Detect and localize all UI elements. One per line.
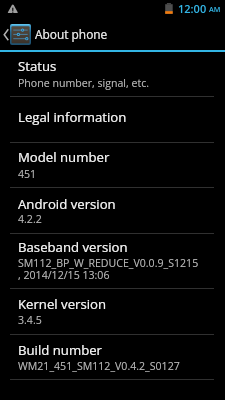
staticText: Legal information — [18, 108, 127, 126]
staticText: WM21_451_SM112_V0.4.2_S0127 — [18, 359, 180, 373]
staticText: 451 — [18, 167, 37, 181]
staticText: AM — [209, 4, 221, 14]
staticText: Phone number, signal, etc. — [18, 76, 150, 90]
staticText: Kernel version — [18, 295, 107, 313]
staticText: 12:00 — [178, 1, 207, 16]
staticText: Status — [18, 57, 57, 75]
staticText: SM112_BP_W_REDUCE_V0.0.9_S1215 , 2014/12… — [18, 256, 199, 282]
staticText: 3.4.5 — [18, 313, 42, 327]
button[interactable]: Build number — [0, 335, 225, 379]
staticText: Android version — [18, 195, 116, 213]
button[interactable]: Kernel version — [0, 289, 225, 334]
staticText: Build number — [18, 341, 103, 359]
staticText: About phone — [35, 26, 108, 42]
button[interactable]: Android version — [0, 188, 225, 233]
button[interactable]: Navigate up: About phone — [0, 16, 225, 50]
button[interactable]: Model number — [0, 143, 225, 187]
staticText: Model number — [18, 148, 110, 166]
staticText: 4.2.2 — [18, 212, 42, 226]
button[interactable]: Status — [0, 52, 225, 96]
button[interactable]: Baseband version — [0, 234, 225, 288]
staticText: Baseband version — [18, 238, 128, 256]
button[interactable]: Legal information — [0, 97, 225, 142]
